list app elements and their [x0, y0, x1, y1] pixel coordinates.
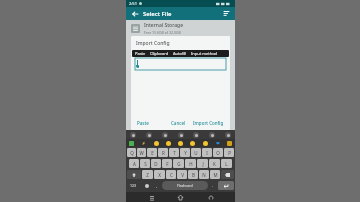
staticText: P — [228, 150, 231, 156]
button[interactable]: Z — [142, 170, 153, 179]
button[interactable]: Emoji — [227, 141, 232, 146]
button[interactable]: Paste — [135, 119, 151, 127]
button[interactable]: Import Config — [191, 119, 226, 127]
button[interactable]: J — [197, 159, 208, 168]
staticText: Import Config — [193, 120, 224, 126]
button[interactable]: O — [213, 148, 223, 157]
button[interactable]: V — [177, 170, 187, 179]
staticText: C — [170, 172, 173, 178]
button[interactable]: R — [158, 148, 168, 157]
staticText: Z — [146, 172, 149, 178]
button[interactable]: P — [224, 148, 234, 157]
staticText: Paste — [137, 120, 149, 126]
button[interactable]: G — [173, 159, 184, 168]
button[interactable]: A — [129, 159, 139, 168]
staticText: U — [194, 150, 198, 156]
button[interactable]: Y — [180, 148, 190, 157]
staticText: Flashcard — [177, 183, 193, 188]
staticText: Free 15.6GB of 32.0GB — [144, 30, 181, 35]
button[interactable] — [135, 58, 226, 70]
button[interactable]: H — [185, 159, 196, 168]
staticText: H — [189, 161, 193, 167]
staticText: Autofill — [173, 51, 187, 56]
button[interactable]: X — [154, 170, 165, 179]
button[interactable]: Heart — [215, 141, 220, 146]
button[interactable]: Clipboard — [150, 51, 169, 56]
button[interactable]: Backspace — [221, 170, 234, 179]
button[interactable]: Emoji — [166, 141, 171, 146]
staticText: W — [139, 150, 144, 156]
button[interactable]: Input method — [191, 51, 218, 56]
button[interactable]: Keyboard tool — [162, 132, 168, 138]
button[interactable]: N — [199, 170, 209, 179]
button[interactable]: Quick — [141, 141, 146, 146]
staticText: N — [202, 172, 206, 178]
button[interactable]: Keyboard tool — [178, 132, 184, 138]
button[interactable]: Comma — [153, 181, 161, 190]
staticText: 123 — [130, 183, 137, 188]
button[interactable]: Check — [129, 141, 134, 146]
button[interactable]: T — [169, 148, 179, 157]
button[interactable]: Emoji — [203, 141, 208, 146]
button[interactable]: L — [221, 159, 232, 168]
button[interactable]: Emoji — [154, 141, 159, 146]
staticText: Cancel — [171, 120, 186, 126]
button[interactable]: Autofill — [173, 51, 187, 56]
staticText: ⚡ — [142, 141, 146, 146]
button[interactable]: Home — [176, 193, 185, 202]
button[interactable]: Shift — [127, 170, 141, 179]
staticText: S — [144, 161, 147, 167]
button[interactable]: Keyboard tool — [225, 132, 231, 138]
staticText: Input method — [191, 51, 218, 56]
button[interactable]: S — [140, 159, 150, 168]
staticText: G — [177, 161, 181, 167]
staticText: I — [206, 150, 208, 156]
staticText: D — [154, 161, 158, 167]
button[interactable]: Keyboard tool — [130, 132, 136, 138]
staticText: Y — [184, 150, 187, 156]
button[interactable]: Enter — [218, 181, 234, 190]
button[interactable]: Paste — [135, 51, 146, 56]
button[interactable]: M — [210, 170, 220, 179]
button[interactable]: Keyboard tool — [146, 132, 152, 138]
staticText: T — [173, 150, 176, 156]
staticText: , — [156, 183, 158, 188]
button[interactable]: E — [147, 148, 157, 157]
button[interactable]: Emoji — [141, 181, 152, 190]
staticText: J — [202, 161, 204, 167]
staticText: O — [216, 150, 220, 156]
staticText: Paste — [135, 51, 146, 56]
button[interactable]: I — [202, 148, 212, 157]
button[interactable]: 123 — [127, 181, 140, 190]
staticText: M — [213, 172, 218, 178]
button[interactable]: Keyboard tool — [209, 132, 215, 138]
button[interactable]: D — [151, 159, 161, 168]
staticText: K — [213, 161, 216, 167]
button[interactable]: Cancel — [169, 119, 188, 127]
button[interactable]: Keyboard tool — [193, 132, 199, 138]
staticText: V — [181, 172, 184, 178]
button[interactable]: Q — [127, 148, 136, 157]
button[interactable]: W — [137, 148, 146, 157]
staticText: B — [192, 172, 195, 178]
button[interactable]: Flashcard — [162, 181, 208, 190]
button[interactable]: Internal Storage — [126, 20, 235, 36]
staticText: Import Config — [136, 40, 170, 47]
staticText: ❤ — [216, 141, 220, 146]
button[interactable]: Emoji — [190, 141, 195, 146]
button[interactable]: F — [162, 159, 172, 168]
button[interactable]: Back — [130, 9, 139, 18]
button[interactable]: Back — [206, 193, 215, 202]
button[interactable]: Emoji — [178, 141, 183, 146]
staticText: Select File — [143, 10, 172, 18]
button[interactable]: B — [188, 170, 198, 179]
button[interactable]: Sort — [222, 9, 231, 18]
button[interactable]: Recents — [147, 193, 156, 202]
staticText: Q — [130, 150, 134, 156]
button[interactable]: U — [191, 148, 201, 157]
button[interactable]: K — [209, 159, 220, 168]
staticText: X — [158, 172, 161, 178]
staticText: F — [166, 161, 169, 167]
button[interactable]: Period — [209, 181, 217, 190]
button[interactable]: C — [166, 170, 176, 179]
